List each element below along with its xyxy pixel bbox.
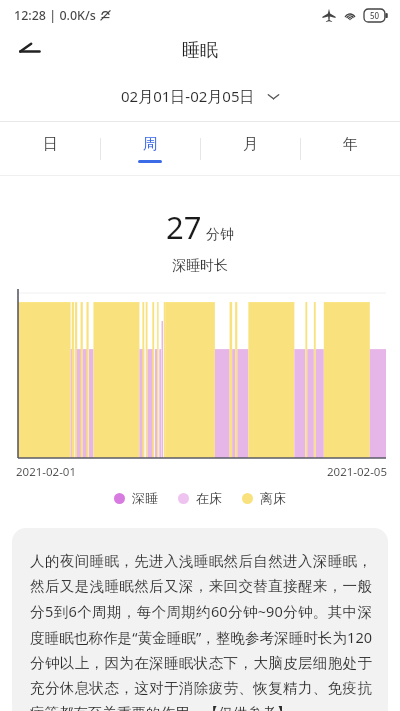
staticText: 50 <box>370 10 380 21</box>
button[interactable]: Back <box>8 30 50 70</box>
staticText: 2021-02-01 <box>16 464 77 480</box>
staticText: 2021-02-05 <box>327 464 388 480</box>
staticText: 日 <box>43 135 58 154</box>
staticText: 离床 <box>260 490 286 506</box>
staticText: 在床 <box>196 490 222 506</box>
staticText: 深睡时长 <box>172 257 228 275</box>
button[interactable]: 年 <box>300 122 400 176</box>
staticText: 12:28 | 0.0K/s <box>14 7 96 24</box>
button[interactable]: 月 <box>200 122 300 176</box>
button[interactable]: 02月01日-02月05日 <box>121 86 280 106</box>
staticText: 02月01日-02月05日 <box>121 86 255 106</box>
staticText: 睡眠 <box>182 39 218 62</box>
staticText: 深睡 <box>132 490 158 506</box>
staticText: 年 <box>343 135 358 154</box>
button[interactable]: 周 <box>100 122 200 176</box>
staticText: 分钟 <box>206 226 234 244</box>
button[interactable]: 日 <box>0 122 100 176</box>
staticText: 月 <box>243 135 258 154</box>
staticText: 周 <box>143 135 158 154</box>
staticText: 27 <box>166 206 202 248</box>
staticText: 人的夜间睡眠，先进入浅睡眠然后自然进入深睡眠，然后又是浅睡眠然后又深，来回交替直… <box>30 552 372 711</box>
